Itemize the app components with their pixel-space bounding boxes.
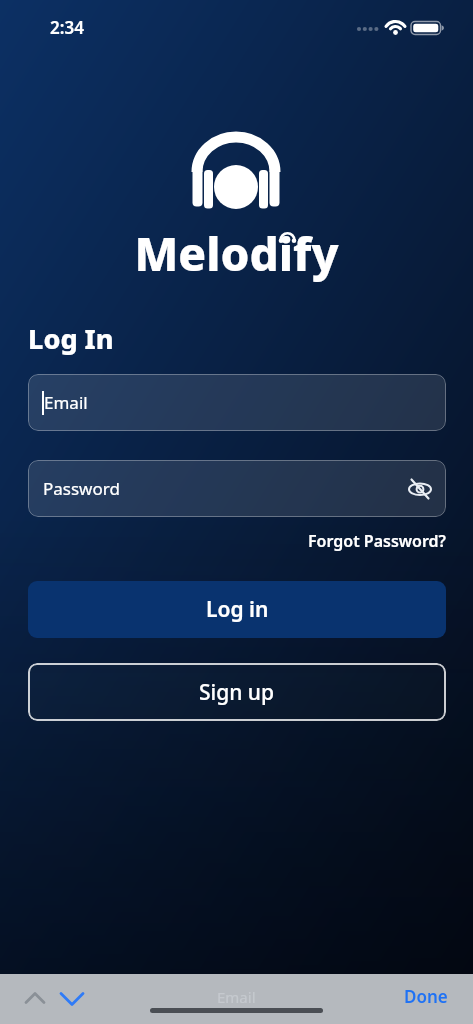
- staticText: Password: [43, 477, 120, 500]
- button[interactable]: Forgot Password?: [308, 530, 446, 552]
- button[interactable]: Done: [404, 985, 448, 1008]
- button[interactable]: [24, 990, 86, 1008]
- staticText: Log in: [206, 595, 269, 624]
- staticText: Sign up: [199, 678, 275, 707]
- staticText: Email: [44, 391, 88, 414]
- staticText: Email: [217, 987, 256, 1007]
- staticText: Melodify: [0, 222, 473, 285]
- staticText: 2:34: [50, 16, 84, 39]
- button[interactable]: Sign up: [28, 663, 446, 721]
- button[interactable]: Email: [28, 374, 446, 431]
- button[interactable]: Password: [28, 460, 446, 517]
- button[interactable]: Log in: [28, 581, 446, 638]
- staticText: Log In: [28, 320, 114, 357]
